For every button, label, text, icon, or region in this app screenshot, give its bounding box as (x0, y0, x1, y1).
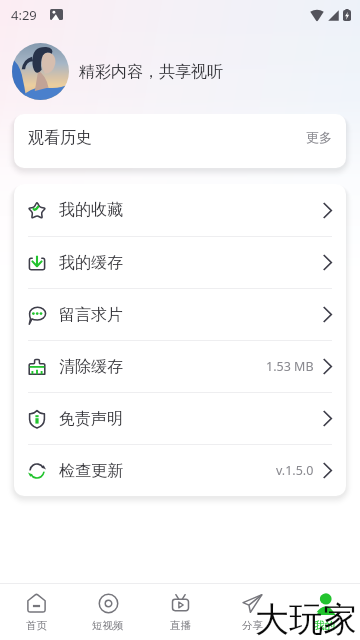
staticText: 精彩内容，共享视听 (79, 62, 223, 82)
button[interactable]: 观看历史 (14, 114, 346, 168)
staticText: 我的 (314, 619, 335, 632)
staticText: 分享 (242, 619, 263, 632)
staticText: 清除缓存 (59, 357, 123, 377)
button[interactable]: 分享 (216, 584, 288, 640)
button[interactable]: 清除缓存 (14, 341, 346, 392)
staticText: 观看历史 (28, 128, 92, 148)
staticText: 我的收藏 (59, 200, 123, 220)
button[interactable]: 免责声明 (14, 393, 346, 444)
staticText: 留言求片 (59, 305, 123, 325)
button[interactable]: 我的缓存 (14, 237, 346, 288)
button[interactable]: 留言求片 (14, 289, 346, 340)
button[interactable]: 我的收藏 (14, 184, 346, 236)
staticText: 直播 (170, 619, 191, 632)
staticText: 4:29 (11, 6, 37, 24)
staticText: 1.53 MB (266, 358, 314, 375)
staticText: 更多 (306, 129, 332, 145)
button[interactable]: 精彩内容，共享视听 (12, 29, 360, 114)
button[interactable]: 检查更新 (14, 445, 346, 496)
staticText: 我的缓存 (59, 253, 123, 273)
staticText: 首页 (26, 619, 47, 632)
button[interactable]: 直播 (144, 584, 216, 640)
staticText: v.1.5.0 (276, 462, 314, 479)
staticText: 大玩家 (255, 598, 357, 640)
button[interactable]: 短视频 (72, 584, 144, 640)
staticText: 短视频 (92, 619, 124, 632)
button[interactable]: 我的 (288, 584, 360, 640)
button[interactable]: 首页 (0, 584, 72, 640)
staticText: 免责声明 (59, 409, 123, 429)
staticText: 检查更新 (59, 461, 123, 481)
